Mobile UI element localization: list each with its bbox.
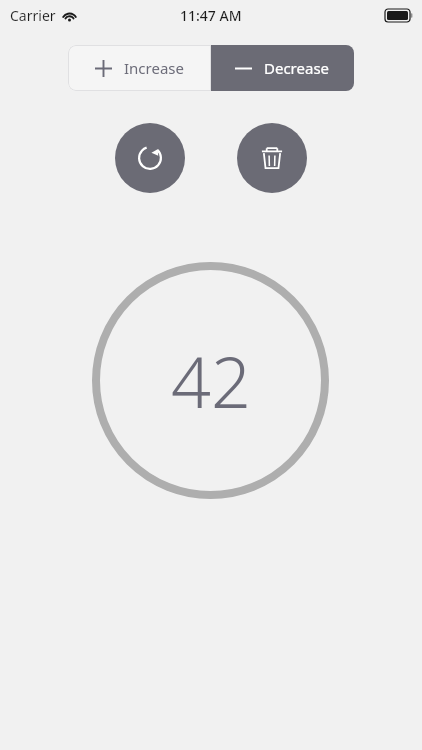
button[interactable]: Delete: [237, 123, 307, 193]
staticText: Decrease: [264, 58, 330, 78]
staticText: 11:47 AM: [180, 6, 242, 25]
staticText: 42: [171, 333, 251, 428]
button[interactable]: Increase: [68, 45, 211, 91]
button[interactable]: Reset: [115, 123, 185, 193]
button[interactable]: Decrease: [211, 45, 354, 91]
button[interactable]: 42: [92, 262, 329, 499]
staticText: Carrier: [10, 6, 56, 25]
staticText: Increase: [124, 58, 184, 78]
